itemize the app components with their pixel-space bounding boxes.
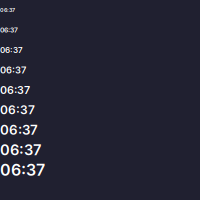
staticText: 06:37: [0, 83, 30, 96]
staticText: 06:37: [0, 141, 41, 159]
staticText: 06:37: [0, 103, 35, 117]
staticText: 06:37: [0, 7, 15, 13]
staticText: 06:37: [0, 160, 45, 180]
staticText: 06:37: [0, 45, 23, 55]
staticText: 06:37: [0, 26, 18, 34]
staticText: 06:37: [0, 64, 26, 76]
staticText: 06:37: [0, 122, 38, 138]
